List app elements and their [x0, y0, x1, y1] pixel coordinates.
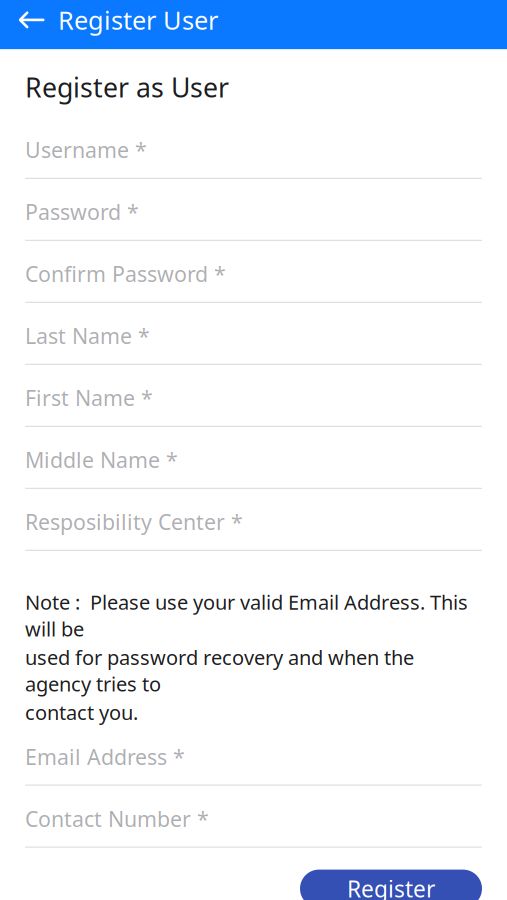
staticText: Register: [347, 874, 435, 900]
button[interactable]: Register: [300, 870, 482, 900]
staticText: Last Name *: [25, 322, 150, 350]
staticText: Resposibility Center *: [25, 508, 243, 536]
staticText: Register User: [58, 3, 218, 37]
staticText: Contact Number *: [25, 804, 209, 833]
button[interactable]: Back: [6, 0, 58, 49]
staticText: Note : Please use your valid Email Addre…: [25, 589, 468, 642]
staticText: Confirm Password *: [25, 260, 226, 288]
staticText: contact you.: [25, 699, 138, 726]
staticText: used for password recovery and when the …: [25, 644, 414, 697]
staticText: Username *: [25, 136, 147, 164]
staticText: Password *: [25, 198, 139, 226]
staticText: First Name *: [25, 384, 153, 412]
staticText: Register as User: [25, 69, 229, 105]
staticText: Middle Name *: [25, 446, 178, 474]
staticText: Email Address *: [25, 742, 185, 771]
